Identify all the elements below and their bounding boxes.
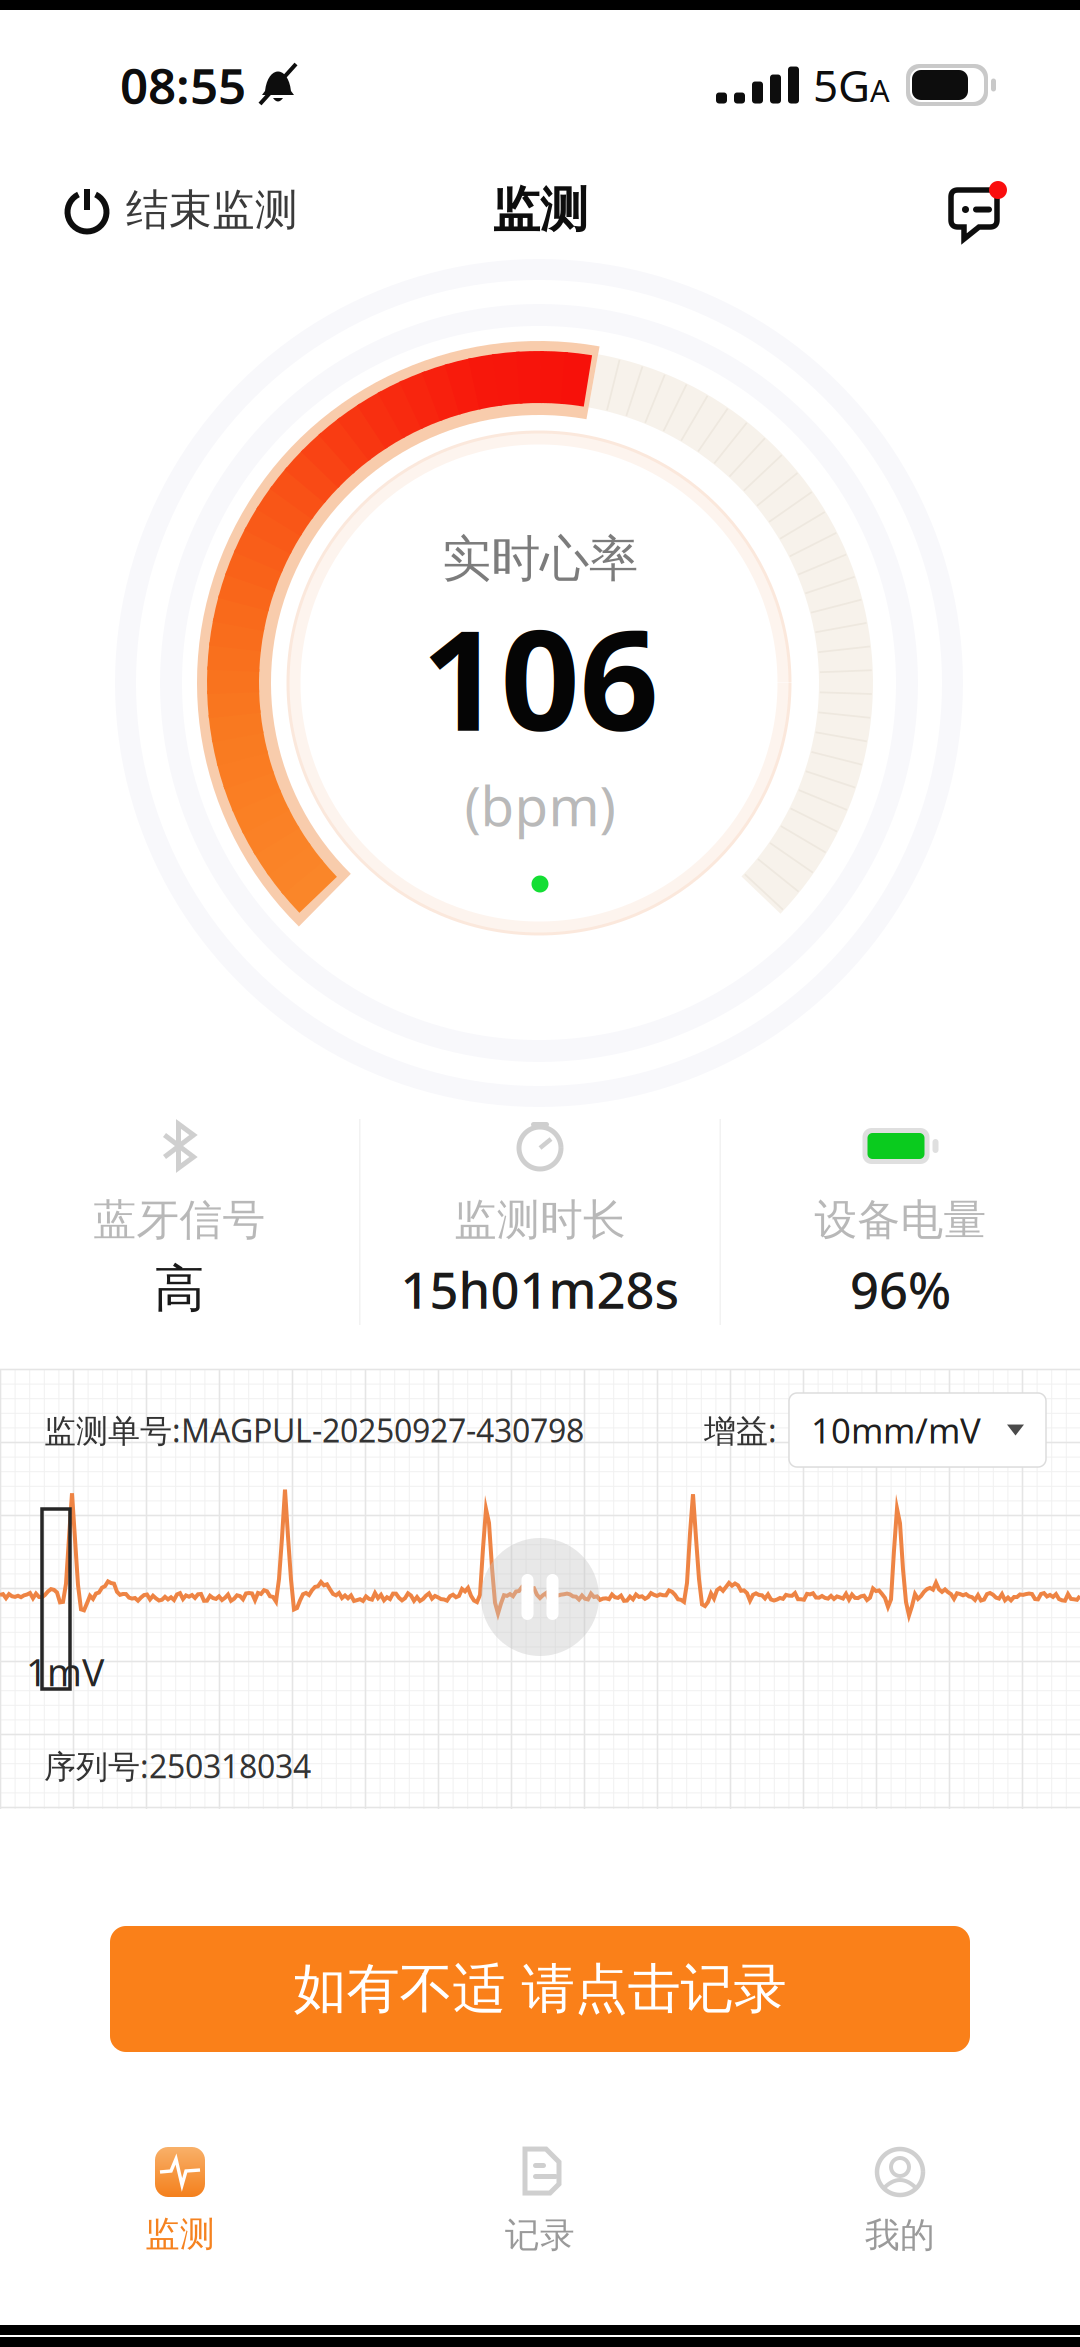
button[interactable]: 结束监测	[62, 168, 308, 252]
button[interactable]: 记录	[360, 2146, 720, 2257]
staticText: 如有不适 请点击记录	[293, 1956, 786, 2022]
staticText: 1mV	[26, 1647, 104, 1696]
staticText: 10mm/mV	[811, 1407, 981, 1453]
staticText: 5G	[813, 56, 870, 114]
staticText: 实时心率	[442, 529, 638, 589]
staticText: (bpm)	[464, 769, 615, 841]
staticText: A	[870, 70, 890, 110]
staticText: 监测	[492, 180, 588, 239]
staticText: 序列号:250318034	[44, 1744, 311, 1787]
staticText: 蓝牙信号	[93, 1194, 265, 1246]
staticText: 记录	[505, 2214, 575, 2257]
staticText: 08:55	[120, 52, 246, 118]
staticText: 监测时长	[454, 1194, 626, 1246]
staticText: 监测	[145, 2213, 215, 2256]
button[interactable]: 10mm/mV	[777, 1393, 1046, 1467]
staticText: 监测单号:MAGPUL-20250927-430798	[44, 1409, 584, 1451]
button[interactable]: 我的	[720, 2146, 1080, 2257]
staticText: 结束监测	[126, 184, 298, 236]
staticText: 15h01m28s	[400, 1255, 679, 1323]
staticText: 106	[421, 585, 658, 769]
button[interactable]: 消息	[946, 172, 1008, 248]
staticText: 我的	[865, 2214, 935, 2257]
button[interactable]: 如有不适 请点击记录	[110, 1926, 970, 2052]
button[interactable]: 监测	[0, 2147, 360, 2256]
staticText: 96%	[850, 1255, 951, 1323]
staticText: 设备电量	[814, 1194, 986, 1246]
staticText: 高	[154, 1258, 205, 1320]
staticText: 增益:	[704, 1409, 777, 1451]
